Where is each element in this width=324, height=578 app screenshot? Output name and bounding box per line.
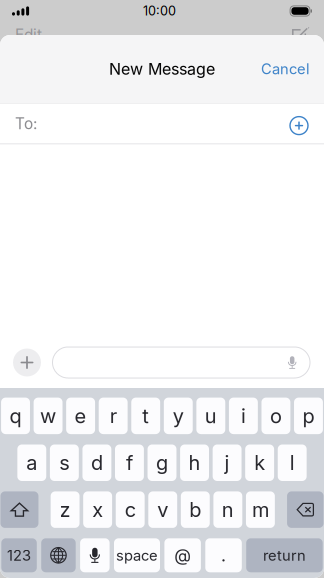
button[interactable]: p <box>294 398 323 434</box>
staticText: @ <box>174 545 191 566</box>
button[interactable]: l <box>278 444 307 481</box>
button[interactable]: x <box>83 491 112 528</box>
button[interactable]: g <box>147 444 176 481</box>
staticText: r <box>110 404 117 428</box>
staticText: . <box>221 545 226 566</box>
staticText: h <box>188 451 200 475</box>
button[interactable]: d <box>82 444 111 481</box>
button[interactable]: m <box>246 491 275 528</box>
button[interactable]: Next keyboard <box>41 538 76 572</box>
button[interactable]: return <box>246 538 323 572</box>
staticText: w <box>40 404 56 428</box>
staticText: 10:00 <box>143 3 176 19</box>
button[interactable]: r <box>99 398 128 434</box>
button[interactable]: @ <box>164 538 201 572</box>
staticText: d <box>91 451 103 475</box>
staticText: k <box>254 451 265 475</box>
button[interactable]: o <box>261 398 290 434</box>
button[interactable]: k <box>245 444 274 481</box>
button[interactable]: f <box>115 444 144 481</box>
button[interactable]: Cancel <box>261 60 310 78</box>
button[interactable]: e <box>66 398 95 434</box>
staticText: 123 <box>7 546 31 564</box>
button[interactable]: a <box>17 444 46 481</box>
staticText: v <box>157 498 168 522</box>
staticText: z <box>60 498 71 522</box>
staticText: q <box>9 404 21 428</box>
staticText: s <box>59 451 69 475</box>
button[interactable]: z <box>51 491 79 528</box>
staticText: i <box>241 404 246 428</box>
button[interactable]: 123 <box>1 538 37 572</box>
staticText: c <box>125 498 136 522</box>
staticText: u <box>205 404 217 428</box>
staticText: y <box>173 404 184 428</box>
staticText: j <box>225 451 230 475</box>
button[interactable]: b <box>181 491 210 528</box>
button[interactable]: t <box>131 398 160 434</box>
staticText: To: <box>15 114 37 133</box>
staticText: g <box>156 451 168 475</box>
button[interactable]: space <box>114 538 160 572</box>
staticText: return <box>263 546 306 564</box>
button[interactable]: c <box>116 491 145 528</box>
staticText: e <box>75 404 87 428</box>
button[interactable]: Edit <box>15 26 42 44</box>
button[interactable]: q <box>1 398 30 434</box>
staticText: x <box>92 498 103 522</box>
staticText: m <box>252 498 269 522</box>
button[interactable]: i <box>229 398 258 434</box>
button[interactable]: . <box>205 538 242 572</box>
staticText: b <box>189 498 201 522</box>
staticText: l <box>290 451 295 475</box>
button[interactable]: Delete <box>287 491 324 528</box>
staticText: p <box>302 404 314 428</box>
button[interactable]: n <box>213 491 242 528</box>
button[interactable]: Dictate <box>80 538 110 572</box>
staticText: n <box>222 498 234 522</box>
staticText: space <box>116 546 158 564</box>
button[interactable]: Add contact <box>290 115 308 133</box>
button[interactable]: s <box>50 444 79 481</box>
staticText: t <box>142 404 149 428</box>
button[interactable]: v <box>148 491 177 528</box>
staticText: f <box>126 451 133 475</box>
button[interactable]: Shift <box>0 491 38 528</box>
staticText: o <box>270 404 282 428</box>
staticText: Cancel <box>261 60 310 78</box>
button[interactable]: j <box>213 444 242 481</box>
staticText: Edit <box>15 26 42 44</box>
button[interactable]: w <box>34 398 62 434</box>
button[interactable]: h <box>180 444 209 481</box>
button[interactable]: Add attachment <box>13 348 41 376</box>
staticText: New Message <box>109 59 215 79</box>
button[interactable]: u <box>196 398 225 434</box>
button[interactable]: Compose <box>292 27 309 42</box>
staticText: a <box>26 451 37 475</box>
button[interactable]: y <box>164 398 193 434</box>
